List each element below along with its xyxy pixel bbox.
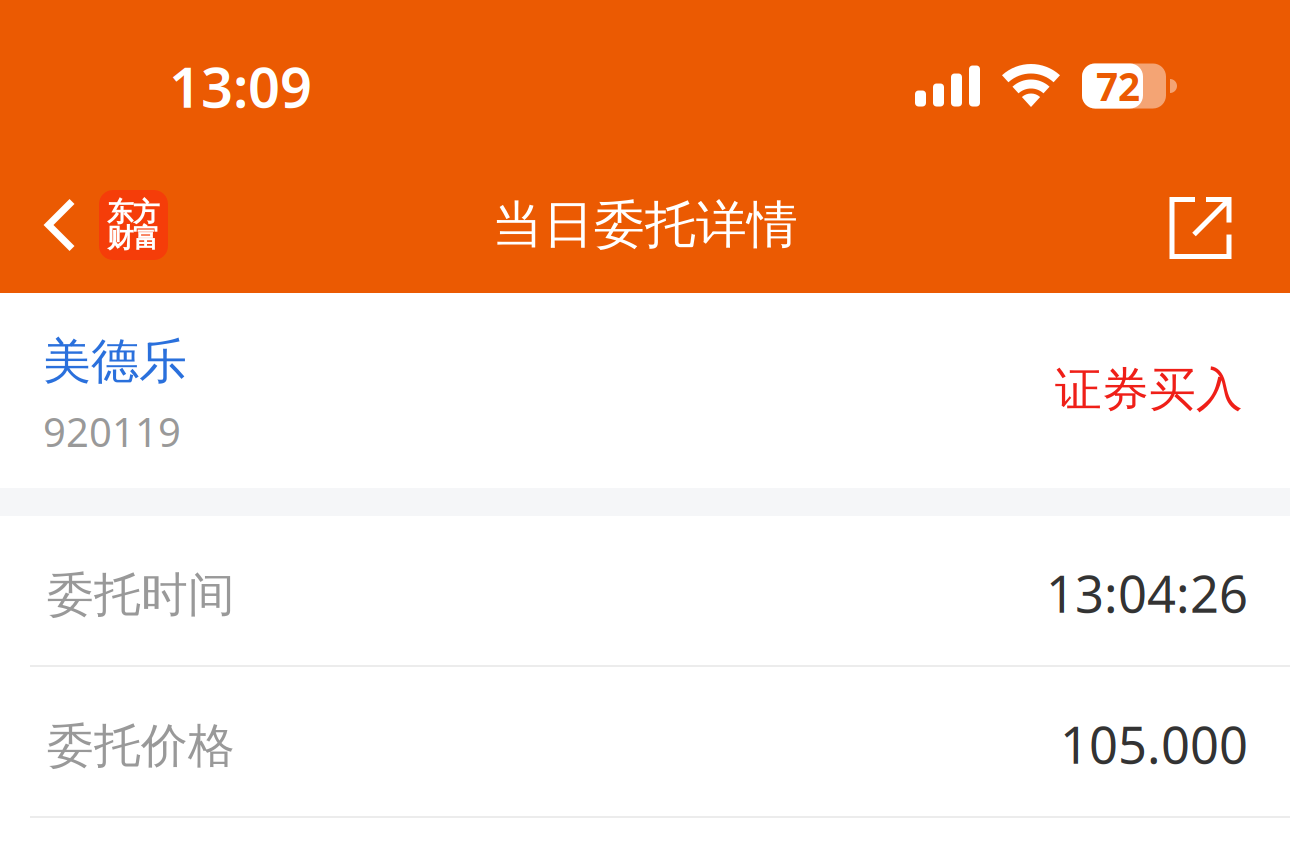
staticText: 13:09 [169, 49, 312, 123]
staticText: 72 [1096, 60, 1140, 112]
staticText: 东 [107, 196, 134, 228]
button[interactable]: 委托时间 [0, 516, 1290, 667]
staticText: 美德乐 [43, 332, 187, 391]
staticText: 委托时间 [47, 566, 235, 624]
staticText: 105.000 [1060, 710, 1248, 778]
button[interactable]: Back [0, 175, 186, 275]
button[interactable]: 美德乐 [0, 293, 1290, 488]
staticText: 方 [133, 196, 160, 228]
button[interactable]: Share [1151, 175, 1290, 275]
button[interactable]: 委托价格 [0, 667, 1290, 818]
staticText: 财 [107, 222, 134, 254]
staticText: 证券买入 [1055, 361, 1243, 418]
staticText: 13:04:26 [1046, 559, 1248, 627]
staticText: 当日委托详情 [492, 194, 798, 256]
staticText: 富 [133, 222, 160, 254]
staticText: 委托价格 [47, 717, 235, 775]
staticText: 920119 [43, 405, 181, 458]
